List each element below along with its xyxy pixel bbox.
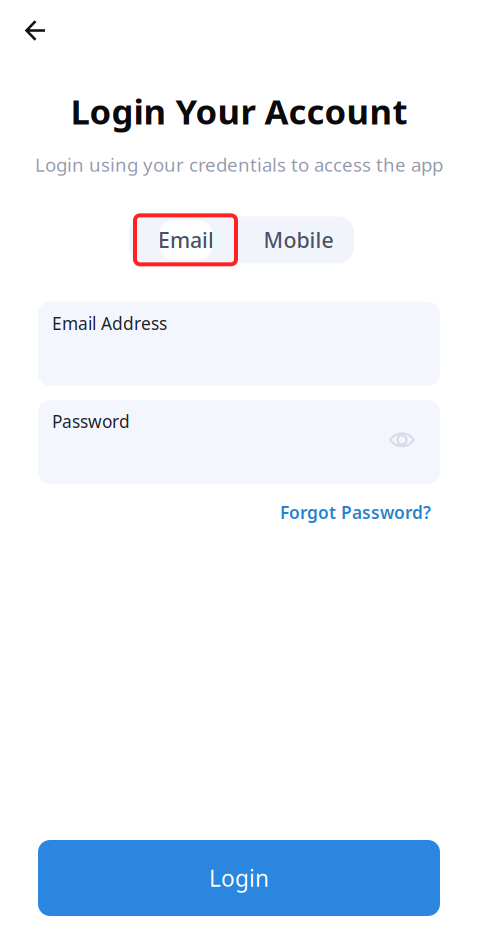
staticText: Password	[52, 410, 130, 433]
button[interactable]: Show password	[379, 425, 440, 455]
staticText: Login using your credentials to access t…	[35, 152, 443, 177]
button[interactable]: Forgot Password?	[280, 495, 431, 530]
button[interactable]: Mobile	[243, 216, 354, 263]
staticText: Email	[158, 226, 214, 254]
staticText: Login Your Account	[70, 88, 407, 134]
staticText: Forgot Password?	[280, 501, 431, 524]
button[interactable]: Back	[0, 0, 62, 54]
staticText: Email Address	[52, 312, 167, 335]
staticText: Login	[209, 863, 269, 893]
button[interactable]: Email	[129, 216, 243, 263]
button[interactable]: Login	[38, 840, 440, 916]
staticText: Mobile	[263, 226, 333, 254]
